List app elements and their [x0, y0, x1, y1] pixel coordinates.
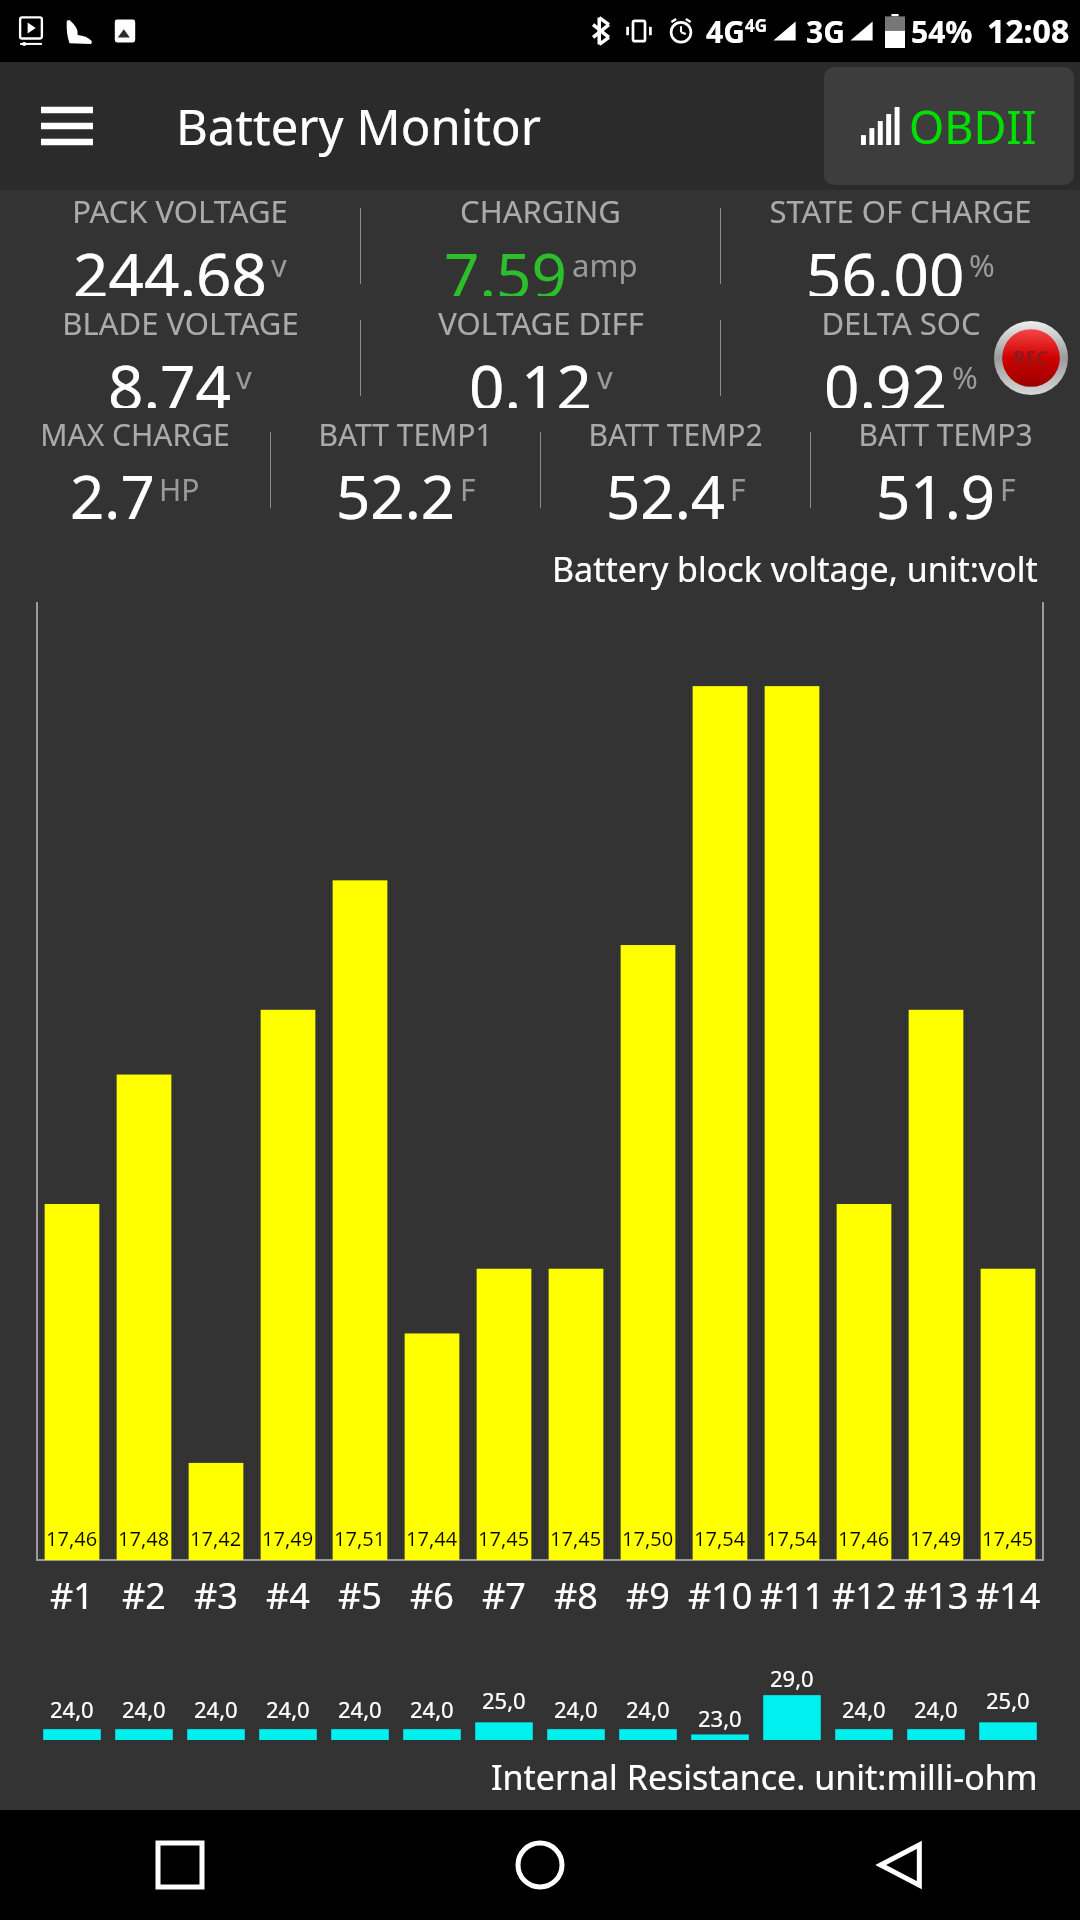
staticText: % — [952, 356, 978, 398]
staticText: #2 — [122, 1571, 166, 1620]
staticText: v — [236, 356, 252, 398]
staticText: #8 — [554, 1571, 598, 1620]
staticText: 4G — [706, 11, 745, 52]
staticText: 4G — [745, 14, 768, 37]
button[interactable]: Home — [360, 1810, 720, 1920]
staticText: 8.74 — [108, 344, 232, 408]
staticText: OBDII — [909, 96, 1037, 157]
staticText: REC — [1013, 345, 1049, 371]
staticText: 17,45 — [478, 1525, 530, 1552]
staticText: 54% — [911, 11, 973, 52]
staticText: #3 — [194, 1571, 238, 1620]
staticText: 24,0 — [194, 1694, 238, 1724]
staticText: 29,0 — [770, 1663, 814, 1693]
staticText: F — [730, 469, 746, 510]
staticText: F — [460, 469, 476, 510]
button[interactable]: BATT TEMP2 — [541, 414, 810, 526]
staticText: 24,0 — [266, 1694, 310, 1724]
button[interactable]: BATT TEMP1 — [271, 414, 540, 526]
staticText: #13 — [904, 1571, 969, 1620]
staticText: Battery Monitor — [176, 93, 541, 160]
button[interactable]: PACK VOLTAGE — [0, 190, 360, 302]
staticText: 24,0 — [626, 1694, 670, 1724]
staticText: 0.12 — [469, 344, 593, 408]
staticText: CHARGING — [460, 190, 621, 232]
button[interactable]: STATE OF CHARGE — [721, 190, 1080, 302]
staticText: 52.4 — [606, 455, 726, 520]
button[interactable]: OBDII — [824, 67, 1074, 185]
staticText: DELTA SOC — [821, 302, 981, 344]
staticText: 17,44 — [406, 1525, 458, 1552]
button[interactable]: Back — [720, 1810, 1080, 1920]
button[interactable]: CHARGING — [361, 190, 720, 302]
staticText: 3G — [806, 11, 845, 52]
button[interactable]: BATT TEMP3 — [811, 414, 1080, 526]
staticText: HP — [159, 469, 200, 510]
staticText: #10 — [688, 1571, 753, 1620]
staticText: #4 — [266, 1571, 310, 1620]
staticText: 24,0 — [338, 1694, 382, 1724]
staticText: 17,46 — [46, 1525, 98, 1552]
staticText: #5 — [338, 1571, 382, 1620]
staticText: 24,0 — [122, 1694, 166, 1724]
staticText: v — [597, 356, 613, 398]
staticText: 0.92 — [824, 344, 948, 408]
staticText: 17,49 — [910, 1525, 962, 1552]
staticText: 17,45 — [550, 1525, 602, 1552]
staticText: 17,45 — [982, 1525, 1034, 1552]
staticText: 7.59 — [444, 232, 568, 296]
button[interactable]: Recent apps — [0, 1810, 360, 1920]
staticText: #7 — [482, 1571, 526, 1620]
staticText: BATT TEMP2 — [588, 414, 763, 455]
staticText: 51.9 — [876, 455, 996, 520]
staticText: 52.2 — [336, 455, 456, 520]
staticText: 24,0 — [554, 1694, 598, 1724]
button[interactable]: BLADE VOLTAGE — [0, 302, 360, 414]
staticText: 17,46 — [838, 1525, 890, 1552]
staticText: 25,0 — [482, 1685, 526, 1715]
staticText: F — [1000, 469, 1016, 510]
staticText: 17,50 — [622, 1525, 674, 1552]
staticText: 12:08 — [987, 9, 1070, 53]
button[interactable]: Record — [994, 321, 1068, 395]
staticText: 2.7 — [70, 455, 155, 520]
staticText: #14 — [976, 1571, 1041, 1620]
staticText: #12 — [832, 1571, 897, 1620]
button[interactable]: DELTA SOC — [721, 302, 1080, 414]
staticText: 56.00 — [806, 232, 965, 296]
button[interactable]: MAX CHARGE — [0, 414, 270, 526]
staticText: BATT TEMP1 — [318, 414, 493, 455]
staticText: VOLTAGE DIFF — [438, 302, 644, 344]
staticText: #11 — [760, 1571, 825, 1620]
staticText: Battery block voltage, unit:volt — [552, 546, 1038, 592]
staticText: 24,0 — [842, 1694, 886, 1724]
staticText: 17,48 — [118, 1525, 170, 1552]
staticText: #6 — [410, 1571, 454, 1620]
staticText: 17,51 — [334, 1525, 386, 1552]
staticText: #9 — [626, 1571, 670, 1620]
staticText: 17,54 — [766, 1525, 818, 1552]
staticText: 17,54 — [694, 1525, 746, 1552]
staticText: 25,0 — [986, 1685, 1030, 1715]
staticText: BATT TEMP3 — [858, 414, 1033, 455]
button[interactable]: Open navigation menu — [36, 95, 98, 157]
staticText: 17,49 — [262, 1525, 314, 1552]
staticText: STATE OF CHARGE — [769, 190, 1032, 232]
staticText: amp — [572, 244, 638, 286]
staticText: MAX CHARGE — [40, 414, 230, 455]
staticText: v — [271, 244, 287, 286]
button[interactable]: VOLTAGE DIFF — [361, 302, 720, 414]
staticText: #1 — [50, 1571, 94, 1620]
staticText: 24,0 — [50, 1694, 94, 1724]
staticText: 17,42 — [190, 1525, 242, 1552]
staticText: 244.68 — [73, 232, 267, 296]
staticText: 24,0 — [914, 1694, 958, 1724]
staticText: Internal Resistance. unit:milli-ohm — [491, 1754, 1038, 1800]
staticText: 24,0 — [410, 1694, 454, 1724]
staticText: % — [969, 244, 995, 286]
staticText: 23,0 — [698, 1703, 742, 1733]
staticText: PACK VOLTAGE — [72, 190, 288, 232]
staticText: BLADE VOLTAGE — [62, 302, 299, 344]
